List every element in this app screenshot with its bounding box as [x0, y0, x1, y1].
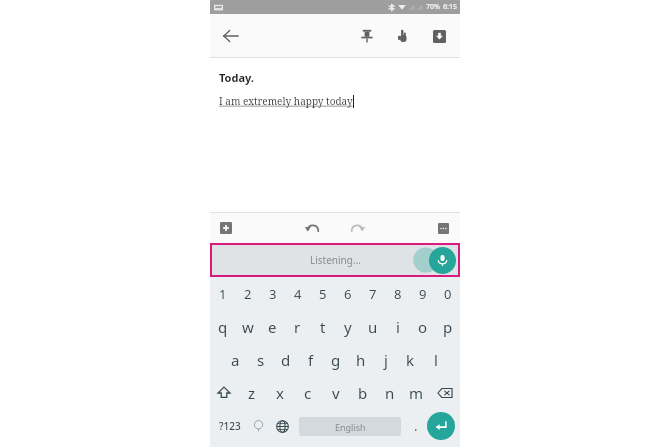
staticText: n: [385, 383, 395, 403]
staticText: z: [248, 383, 256, 403]
button[interactable]: 5: [310, 277, 335, 310]
button[interactable]: o: [410, 310, 435, 343]
staticText: I am extremely happy today: [219, 94, 353, 108]
staticText: v: [332, 383, 340, 403]
button[interactable]: Enter: [427, 412, 455, 440]
button[interactable]: Backspace: [430, 376, 460, 409]
staticText: j: [384, 350, 388, 370]
staticText: p: [443, 317, 453, 337]
button[interactable]: a: [222, 343, 248, 376]
button[interactable]: y: [335, 310, 360, 343]
button[interactable]: Change language: [269, 409, 295, 443]
button[interactable]: Redo: [344, 215, 370, 241]
button[interactable]: g: [323, 343, 348, 376]
staticText: d: [281, 350, 291, 370]
button[interactable]: Back: [214, 19, 248, 53]
staticText: 6: [344, 285, 352, 303]
button[interactable]: l: [423, 343, 448, 376]
button[interactable]: m: [403, 376, 430, 409]
button[interactable]: 1: [210, 277, 235, 310]
staticText: o: [418, 317, 428, 337]
button[interactable]: e: [260, 310, 285, 343]
button[interactable]: s: [248, 343, 273, 376]
button[interactable]: w: [235, 310, 260, 343]
button[interactable]: 7: [360, 277, 385, 310]
staticText: .: [414, 417, 418, 435]
button[interactable]: v: [322, 376, 349, 409]
button[interactable]: r: [285, 310, 310, 343]
staticText: 70%: [426, 2, 440, 12]
staticText: y: [344, 317, 352, 337]
button[interactable]: d: [273, 343, 298, 376]
staticText: 6:15: [443, 2, 457, 12]
staticText: Listening...: [310, 253, 361, 267]
button[interactable]: Microphone: [429, 247, 456, 274]
button[interactable]: u: [360, 310, 385, 343]
button[interactable]: 3: [260, 277, 285, 310]
staticText: w: [242, 317, 254, 337]
button[interactable]: ?123: [213, 409, 247, 443]
staticText: 8: [394, 285, 402, 303]
staticText: q: [218, 317, 228, 337]
staticText: ?123: [219, 419, 241, 433]
button[interactable]: q: [210, 310, 235, 343]
staticText: x: [276, 383, 284, 403]
staticText: 3: [269, 285, 277, 303]
staticText: 2: [244, 285, 252, 303]
button[interactable]: Listening...: [212, 245, 458, 275]
button[interactable]: t: [310, 310, 335, 343]
button[interactable]: h: [348, 343, 373, 376]
staticText: 0: [444, 285, 452, 303]
button[interactable]: p: [435, 310, 460, 343]
button[interactable]: Shift: [210, 376, 238, 409]
button[interactable]: b: [349, 376, 376, 409]
staticText: h: [356, 350, 366, 370]
button[interactable]: c: [294, 376, 322, 409]
staticText: g: [331, 350, 341, 370]
staticText: a: [231, 350, 240, 370]
staticText: r: [294, 317, 301, 337]
button[interactable]: 9: [410, 277, 435, 310]
staticText: 4: [294, 285, 302, 303]
staticText: s: [257, 350, 265, 370]
button[interactable]: 8: [385, 277, 410, 310]
button[interactable]: z: [238, 376, 266, 409]
staticText: k: [406, 350, 415, 370]
button[interactable]: 0: [435, 277, 460, 310]
staticText: f: [308, 350, 314, 370]
button[interactable]: i: [385, 310, 410, 343]
button[interactable]: Add: [214, 216, 238, 240]
staticText: m: [409, 383, 424, 403]
staticText: Today.: [219, 70, 254, 85]
staticText: 7: [369, 285, 377, 303]
button[interactable]: 4: [285, 277, 310, 310]
button[interactable]: Undo: [300, 215, 326, 241]
button[interactable]: Emoji: [247, 409, 269, 443]
button[interactable]: 2: [235, 277, 260, 310]
button[interactable]: Draw: [388, 21, 418, 51]
staticText: 5: [319, 285, 327, 303]
button[interactable]: 6: [335, 277, 360, 310]
button[interactable]: x: [266, 376, 294, 409]
button[interactable]: .: [405, 409, 427, 443]
staticText: t: [320, 317, 326, 337]
staticText: e: [268, 317, 277, 337]
staticText: u: [368, 317, 378, 337]
button[interactable]: Pin: [352, 21, 382, 51]
button[interactable]: Archive: [424, 21, 454, 51]
button[interactable]: j: [373, 343, 398, 376]
staticText: i: [396, 317, 400, 337]
staticText: b: [358, 383, 368, 403]
button[interactable]: f: [298, 343, 323, 376]
button[interactable]: More options: [431, 216, 455, 240]
staticText: c: [304, 383, 312, 403]
staticText: l: [434, 350, 438, 370]
button[interactable]: n: [376, 376, 403, 409]
staticText: 1: [219, 285, 227, 303]
button[interactable]: English: [299, 417, 401, 436]
button[interactable]: k: [398, 343, 423, 376]
staticText: English: [335, 421, 366, 433]
staticText: 9: [419, 285, 427, 303]
